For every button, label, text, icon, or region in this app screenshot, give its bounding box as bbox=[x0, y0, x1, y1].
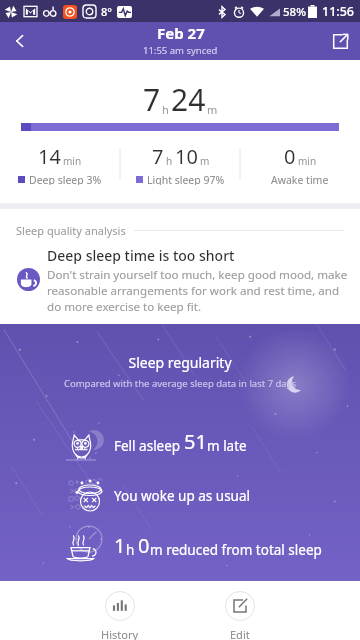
staticText: 58% bbox=[283, 4, 306, 20]
staticText: 0 bbox=[138, 532, 150, 559]
button[interactable]: Back bbox=[0, 22, 40, 60]
staticText: 11:55 am synced bbox=[143, 44, 218, 57]
staticText: Sleep quality analysis bbox=[16, 223, 126, 238]
staticText: Deep sleep 3% bbox=[29, 173, 102, 185]
staticText: 51 bbox=[184, 428, 207, 455]
staticText: 11:56 bbox=[322, 3, 355, 20]
staticText: 24 bbox=[171, 79, 206, 120]
staticText: h bbox=[166, 154, 173, 168]
staticText: m bbox=[207, 102, 218, 117]
staticText: m reduced from total sleep bbox=[150, 541, 322, 559]
staticText: Light sleep 97% bbox=[147, 173, 225, 185]
staticText: Edit bbox=[230, 627, 250, 640]
staticText: 1 bbox=[114, 532, 126, 559]
staticText: Sleep regularity bbox=[0, 353, 360, 372]
staticText: Feb 27 bbox=[157, 23, 205, 43]
staticText: h bbox=[162, 102, 169, 117]
button[interactable]: Edit bbox=[204, 581, 276, 640]
staticText: 8° bbox=[101, 4, 112, 19]
staticText: You woke up as usual bbox=[114, 487, 251, 505]
staticText: Awake time bbox=[271, 173, 329, 185]
staticText: 7 bbox=[143, 79, 161, 120]
staticText: Deep sleep time is too short bbox=[47, 246, 235, 265]
staticText: 7 bbox=[152, 143, 164, 170]
button[interactable]: Share bbox=[320, 22, 360, 60]
staticText: min bbox=[298, 154, 317, 168]
staticText: Fell asleep bbox=[114, 437, 184, 455]
staticText: Compared with the average sleep data in … bbox=[0, 377, 360, 390]
staticText: Don't strain yourself too much, keep goo… bbox=[47, 267, 352, 315]
staticText: 10 bbox=[175, 143, 198, 170]
staticText: 14 bbox=[38, 143, 61, 170]
staticText: m late bbox=[207, 437, 247, 455]
staticText: h bbox=[126, 541, 138, 559]
staticText: min bbox=[63, 154, 82, 168]
staticText: History bbox=[101, 627, 139, 640]
staticText: 0 bbox=[284, 143, 296, 170]
button[interactable]: History bbox=[84, 581, 156, 640]
staticText: m bbox=[200, 154, 210, 168]
